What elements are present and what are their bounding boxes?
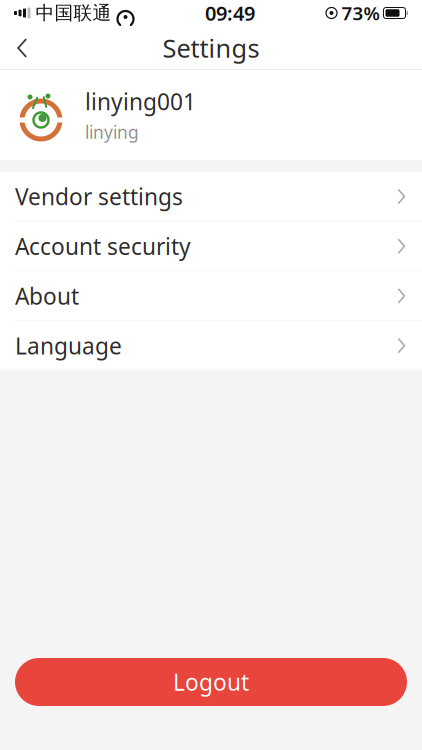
button[interactable]: Vendor settings bbox=[0, 172, 422, 221]
staticText: Settings bbox=[162, 31, 259, 65]
staticText: 73% bbox=[341, 1, 379, 25]
button[interactable]: Language bbox=[0, 321, 422, 370]
button[interactable]: Back bbox=[0, 26, 44, 70]
button[interactable]: linying001 bbox=[0, 70, 422, 160]
staticText: About bbox=[15, 281, 79, 311]
button[interactable]: Account security bbox=[0, 222, 422, 271]
staticText: 09:49 bbox=[205, 0, 255, 26]
staticText: Language bbox=[15, 330, 122, 361]
button[interactable]: About bbox=[0, 271, 422, 320]
staticText: Logout bbox=[173, 667, 249, 697]
staticText: Vendor settings bbox=[15, 181, 183, 211]
button[interactable]: Logout bbox=[15, 658, 407, 706]
staticText: 中国联通 bbox=[35, 1, 111, 24]
staticText: Account security bbox=[15, 231, 191, 261]
staticText: linying bbox=[85, 120, 139, 143]
staticText: linying001 bbox=[85, 86, 196, 116]
